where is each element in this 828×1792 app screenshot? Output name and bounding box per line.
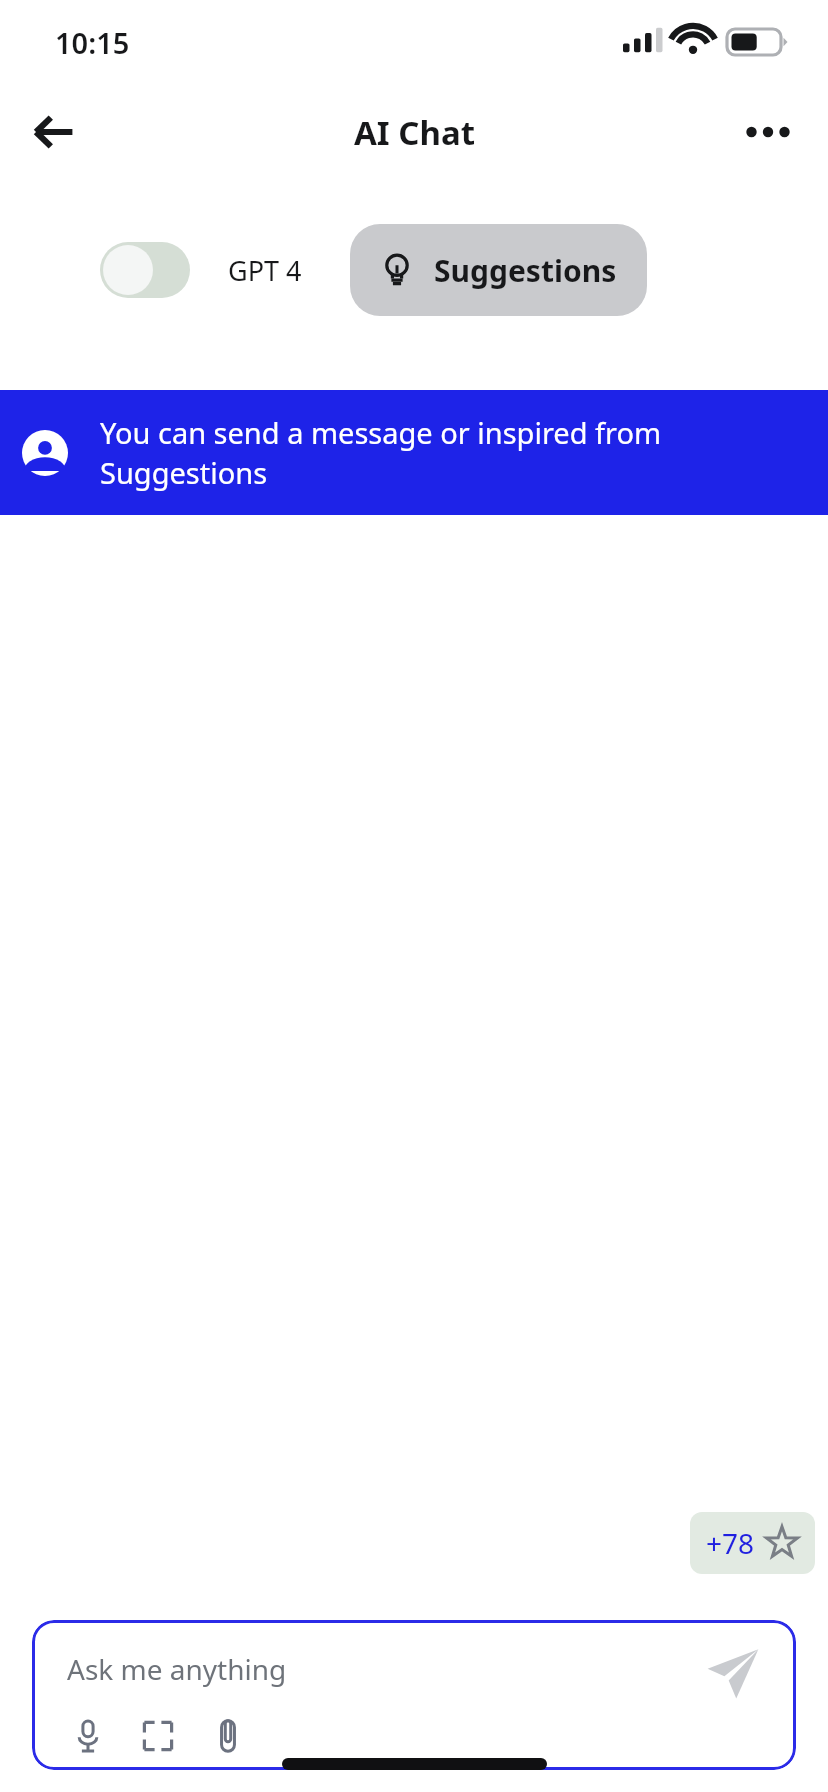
button[interactable]: You can send a message or inspired from … — [0, 390, 828, 515]
button[interactable]: More options — [736, 100, 800, 164]
button[interactable]: Scan — [130, 1708, 186, 1764]
staticText: GPT 4 — [228, 252, 302, 289]
staticText: Suggestions — [434, 250, 617, 291]
button[interactable]: Attach file — [200, 1708, 256, 1764]
staticText: AI Chat — [354, 110, 475, 155]
button[interactable]: GPT 4 toggle — [100, 242, 190, 298]
button[interactable]: +78 — [690, 1512, 815, 1574]
button[interactable]: Ask me anything — [32, 1620, 796, 1770]
staticText: You can send a message or inspired from … — [100, 413, 788, 493]
button[interactable]: Suggestions — [350, 224, 647, 316]
staticText: +78 — [706, 1524, 755, 1562]
staticText: Ask me anything — [67, 1650, 287, 1688]
button[interactable]: Back — [22, 100, 86, 164]
button[interactable]: Send — [694, 1634, 772, 1712]
button[interactable]: Voice input — [60, 1708, 116, 1764]
staticText: 10:15 — [55, 23, 130, 62]
